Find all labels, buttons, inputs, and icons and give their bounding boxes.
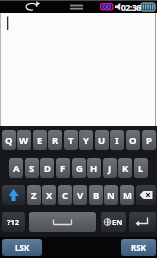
button[interactable]: O [126, 130, 140, 150]
button[interactable]: Z [27, 185, 41, 205]
button[interactable]: W [17, 130, 31, 150]
button[interactable] [0, 13, 157, 126]
button[interactable]: LSK [2, 239, 42, 256]
staticText: R [52, 134, 59, 147]
staticText: W [19, 134, 29, 147]
staticText: D [44, 162, 51, 175]
button[interactable]: D [40, 158, 54, 178]
button[interactable]: U [95, 130, 109, 150]
staticText: N [107, 189, 115, 202]
button[interactable]: H [87, 158, 101, 178]
button[interactable]: ?12 [2, 212, 25, 232]
button[interactable]: K [118, 158, 132, 178]
staticText: J [108, 162, 112, 175]
button[interactable]: C [58, 185, 72, 205]
button[interactable]: F [56, 158, 70, 178]
staticText: I [115, 134, 119, 147]
button[interactable] [136, 185, 156, 205]
staticText: P [146, 134, 152, 147]
button[interactable]: L [134, 158, 148, 178]
button[interactable]: Y [79, 130, 93, 150]
staticText: G [76, 162, 83, 175]
button[interactable]: A [9, 158, 23, 178]
button[interactable]: J [103, 158, 117, 178]
button[interactable]: V [73, 185, 87, 205]
button[interactable]: I [110, 130, 124, 150]
button[interactable]: Q [2, 130, 16, 150]
staticText: Q [5, 134, 13, 147]
staticText: C [62, 189, 69, 202]
staticText: K [122, 162, 129, 175]
staticText: 02:36 [121, 2, 141, 14]
button[interactable]: T [64, 130, 78, 150]
staticText: U [98, 134, 106, 147]
staticText: Z [31, 189, 37, 202]
staticText: V [77, 189, 84, 202]
button[interactable]: RSK [121, 239, 156, 256]
button[interactable] [2, 185, 25, 205]
button[interactable]: R [48, 130, 62, 150]
staticText: LSK [15, 242, 30, 253]
staticText: Y [83, 134, 89, 147]
button[interactable]: S [25, 158, 39, 178]
button[interactable]: E [33, 130, 47, 150]
staticText: O [129, 134, 137, 147]
button[interactable] [29, 212, 96, 232]
button[interactable]: G [72, 158, 86, 178]
staticText: F [60, 162, 66, 175]
staticText: B [93, 189, 100, 202]
staticText: M [123, 189, 132, 202]
button[interactable]: M [120, 185, 134, 205]
button[interactable]: X [42, 185, 56, 205]
staticText: X [46, 189, 53, 202]
staticText: ?12 [7, 217, 20, 227]
button[interactable]: P [142, 130, 156, 150]
button[interactable] [129, 212, 156, 232]
button[interactable]: N [104, 185, 118, 205]
staticText: RSK [131, 242, 146, 253]
button[interactable]: B [89, 185, 103, 205]
staticText: EN [112, 217, 123, 227]
staticText: A [13, 162, 20, 175]
staticText: H [90, 162, 98, 175]
staticText: S [29, 162, 35, 175]
staticText: E [37, 134, 43, 147]
button[interactable]: EN [101, 212, 126, 232]
staticText: T [68, 134, 74, 147]
staticText: L [138, 162, 144, 175]
